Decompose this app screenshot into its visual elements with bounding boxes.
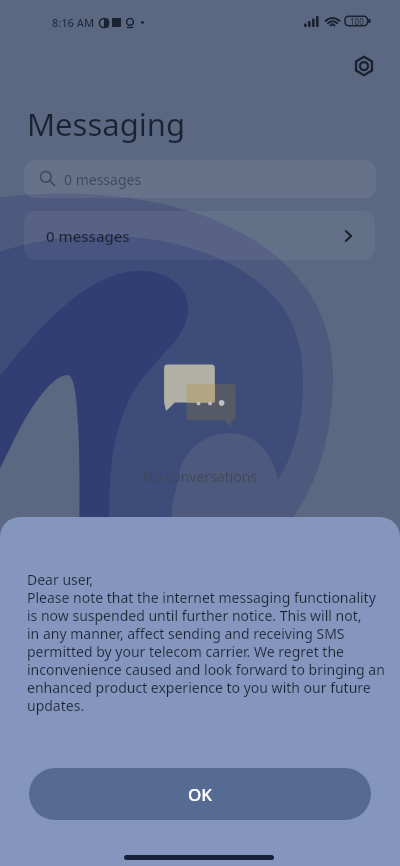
staticText: 8:16 AM xyxy=(52,15,95,30)
staticText: No conversations xyxy=(0,467,400,486)
staticText: 0 messages xyxy=(64,170,142,189)
staticText: Dear user, Please note that the internet… xyxy=(27,570,385,715)
staticText: OK xyxy=(188,783,213,806)
staticText: Messaging xyxy=(27,103,185,145)
button[interactable]: 0 messages xyxy=(24,211,375,260)
button[interactable]: 0 messages xyxy=(24,160,376,198)
staticText: 0 messages xyxy=(46,226,130,246)
button[interactable]: Settings xyxy=(346,48,382,84)
button[interactable]: OK xyxy=(29,768,371,820)
staticText: 100 xyxy=(350,16,364,27)
